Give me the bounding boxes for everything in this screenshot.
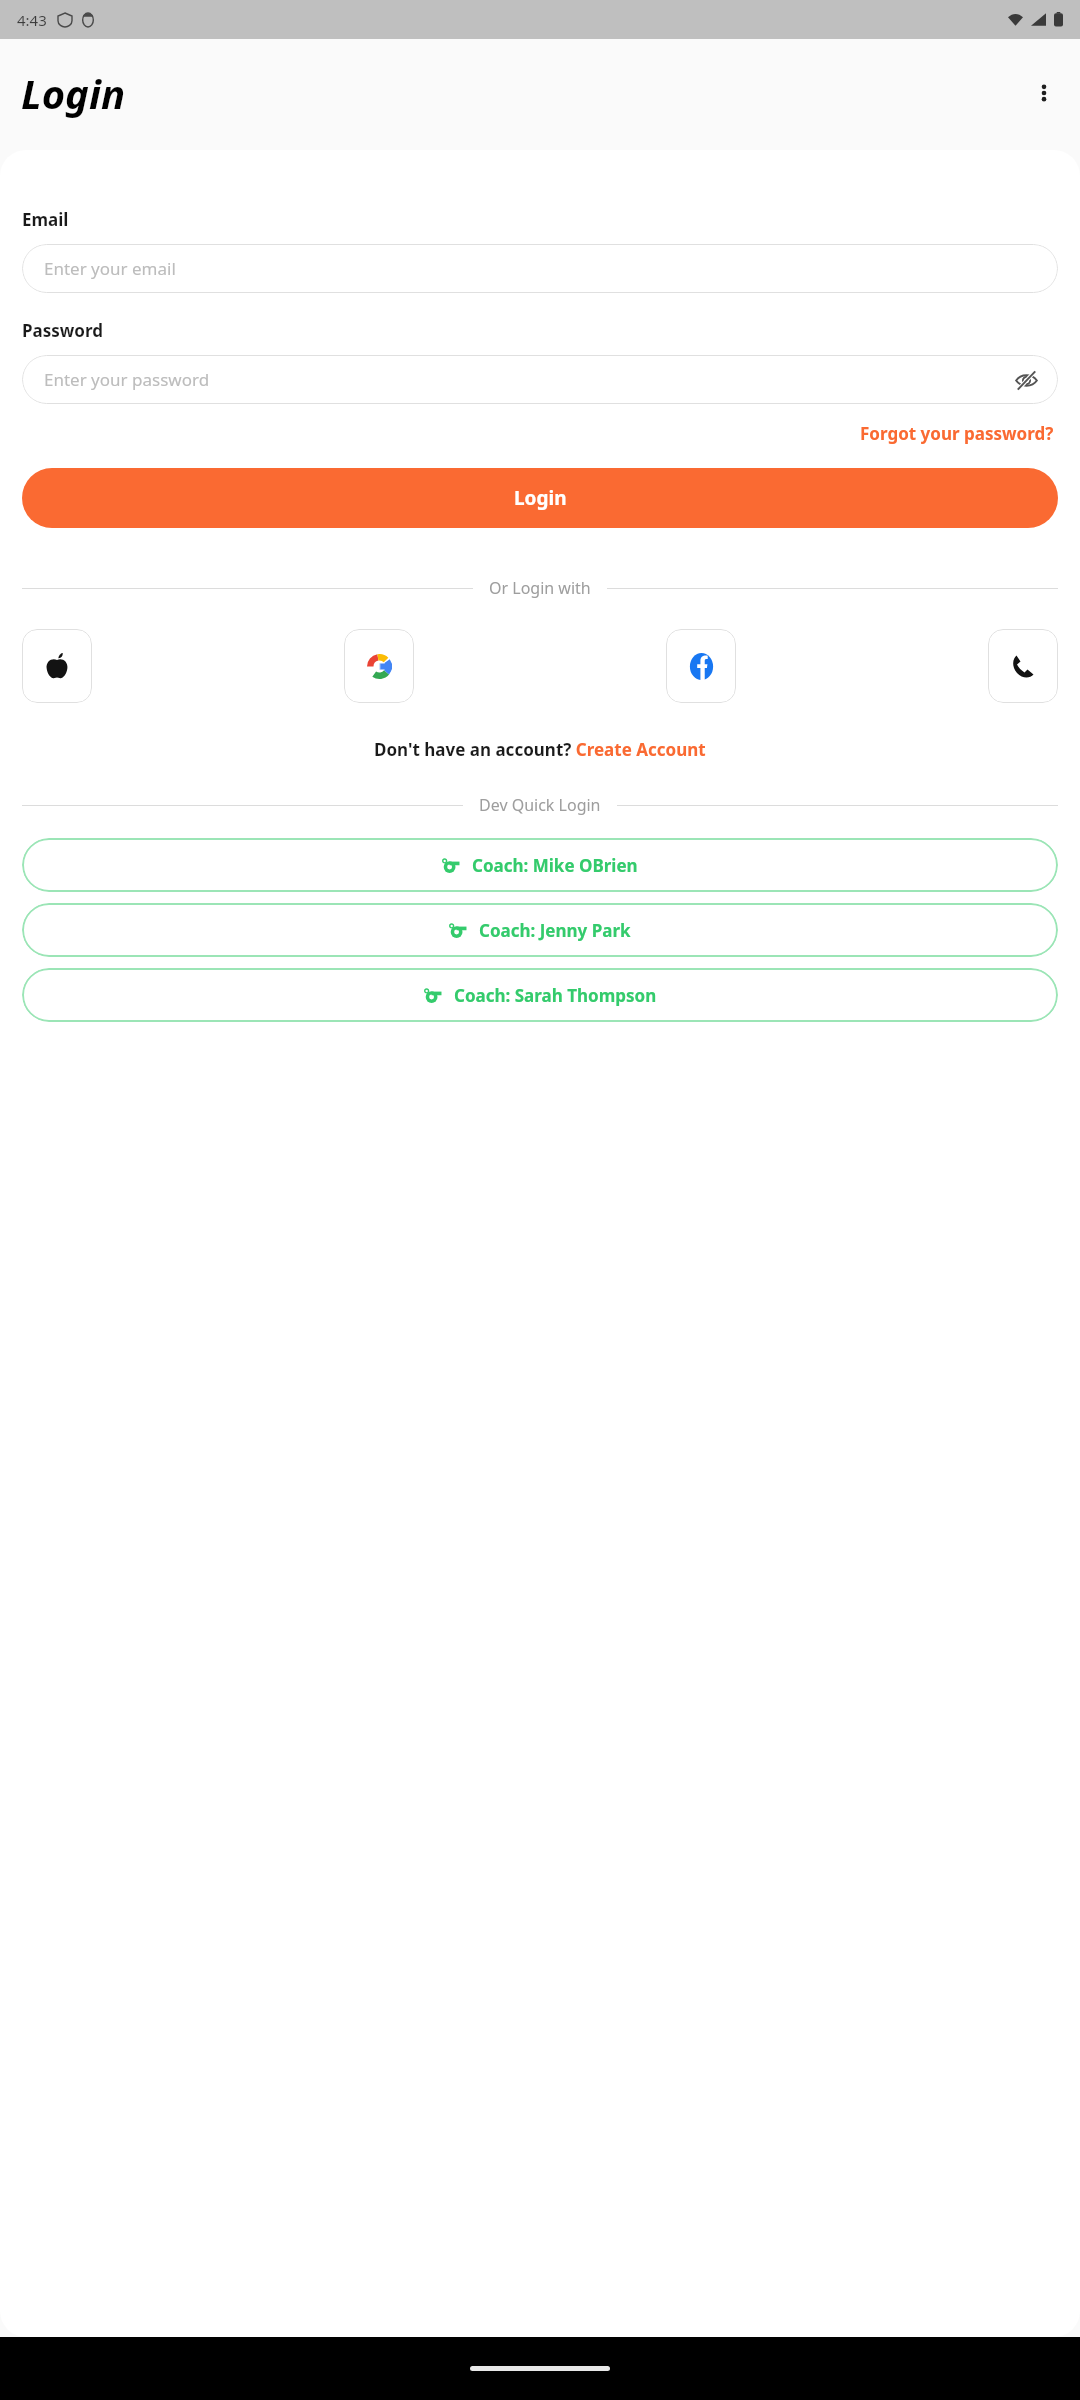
staticText: 4:43 — [17, 10, 47, 30]
button[interactable]: Enter your email — [22, 244, 1058, 293]
staticText: Login — [514, 485, 567, 511]
button[interactable]: Login — [22, 468, 1058, 528]
staticText: Dev Quick Login — [479, 794, 601, 816]
staticText: Coach: Jenny Park — [479, 919, 631, 942]
button[interactable]: Sign in with Apple — [22, 629, 92, 703]
button[interactable]: Enter your password — [22, 355, 1058, 404]
button[interactable]: Coach: Jenny Park — [22, 903, 1058, 957]
staticText: Coach: Mike OBrien — [472, 854, 638, 877]
button[interactable]: Don't have an account? Create Account — [371, 735, 709, 764]
button[interactable]: Forgot your password? — [856, 418, 1058, 449]
button[interactable]: Coach: Sarah Thompson — [22, 968, 1058, 1022]
staticText: Enter your password — [44, 368, 210, 391]
staticText: Forgot your password? — [860, 422, 1054, 445]
staticText: Email — [22, 208, 69, 231]
staticText: Enter your email — [44, 257, 176, 280]
button[interactable]: Coach: Mike OBrien — [22, 838, 1058, 892]
button[interactable]: Sign in with phone — [988, 629, 1058, 703]
staticText: Or Login with — [489, 577, 591, 599]
staticText: Login — [21, 66, 126, 120]
staticText: Password — [22, 319, 103, 342]
button[interactable]: Sign in with Google — [344, 629, 414, 703]
button[interactable]: More options — [1022, 71, 1066, 115]
button[interactable]: Sign in with Facebook — [666, 629, 736, 703]
button[interactable]: Show password — [1008, 362, 1044, 398]
staticText: Don't have an account? Create Account — [374, 738, 706, 761]
staticText: Coach: Sarah Thompson — [454, 984, 657, 1007]
